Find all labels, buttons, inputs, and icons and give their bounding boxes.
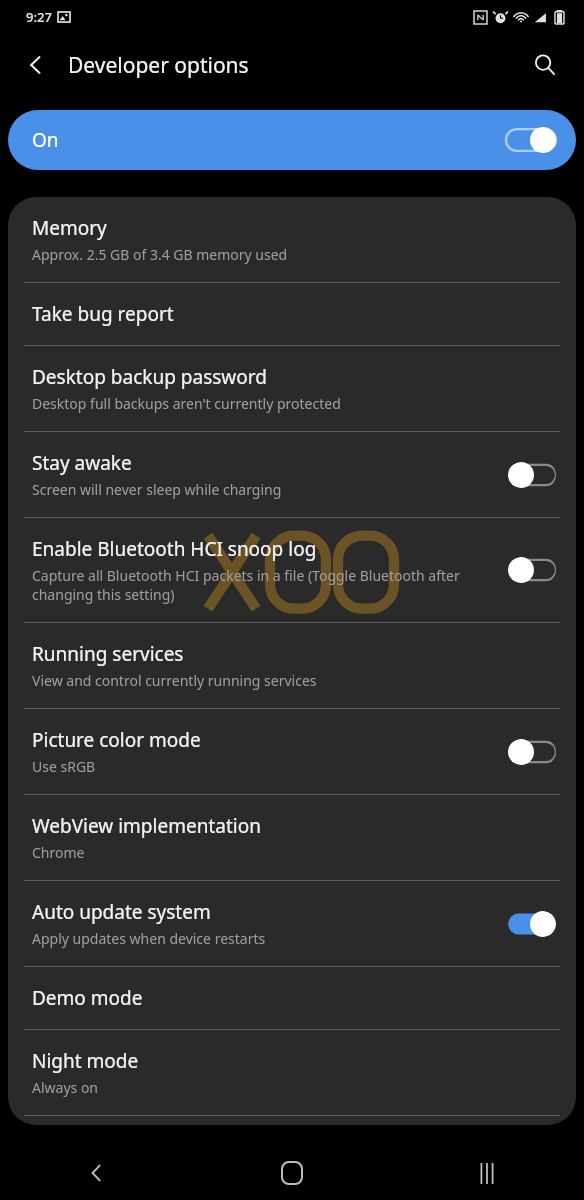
- staticText: Auto update system: [32, 899, 211, 925]
- button[interactable]: Search: [521, 41, 569, 89]
- staticText: Picture color mode: [32, 727, 201, 753]
- staticText: 9:27: [26, 8, 52, 26]
- staticText: Enable Bluetooth HCI snoop log: [32, 536, 317, 562]
- staticText: Night mode: [32, 1048, 139, 1074]
- staticText: Demo mode: [32, 985, 143, 1011]
- staticText: Stay awake: [32, 450, 132, 476]
- staticText: Use sRGB: [32, 757, 96, 776]
- staticText: Apply updates when device restarts: [32, 929, 266, 948]
- button[interactable]: WebView implementation: [8, 795, 576, 880]
- button[interactable]: On: [8, 110, 576, 170]
- button[interactable]: Night mode: [8, 1030, 576, 1115]
- staticText: WebView implementation: [32, 813, 261, 839]
- button[interactable]: Stay awake: [8, 432, 576, 517]
- staticText: Running services: [32, 641, 184, 667]
- button[interactable]: Quick settings developer tiles: [8, 1116, 576, 1125]
- staticText: Capture all Bluetooth HCI packets in a f…: [32, 566, 496, 604]
- staticText: Desktop backup password: [32, 364, 267, 390]
- button[interactable]: Take bug report: [8, 283, 576, 345]
- staticText: Memory: [32, 215, 107, 241]
- button[interactable]: Recent apps: [389, 1146, 584, 1200]
- staticText: Chrome: [32, 843, 85, 862]
- staticText: On: [32, 127, 59, 153]
- button[interactable]: Stay awake toggle: [508, 462, 556, 488]
- staticText: Screen will never sleep while charging: [32, 480, 282, 499]
- staticText: Developer options: [68, 51, 249, 80]
- button[interactable]: Auto update system: [8, 881, 576, 966]
- staticText: Desktop full backups aren't currently pr…: [32, 394, 341, 413]
- button[interactable]: Enable Bluetooth HCI snoop log toggle: [508, 557, 556, 583]
- button[interactable]: Auto update system toggle: [508, 911, 556, 937]
- button[interactable]: Back: [0, 1146, 194, 1200]
- button[interactable]: Desktop backup password: [8, 346, 576, 431]
- button[interactable]: Picture color mode: [8, 709, 576, 794]
- staticText: Always on: [32, 1078, 99, 1097]
- button[interactable]: Home: [194, 1146, 389, 1200]
- button[interactable]: Demo mode: [8, 967, 576, 1029]
- staticText: Approx. 2.5 GB of 3.4 GB memory used: [32, 245, 288, 264]
- button[interactable]: Picture color mode toggle: [508, 739, 556, 765]
- button[interactable]: Running services: [8, 623, 576, 708]
- button[interactable]: Enable Bluetooth HCI snoop log: [8, 518, 576, 622]
- button[interactable]: Memory: [8, 197, 576, 282]
- staticText: Take bug report: [32, 301, 174, 327]
- staticText: View and control currently running servi…: [32, 671, 317, 690]
- button[interactable]: Back: [12, 41, 60, 89]
